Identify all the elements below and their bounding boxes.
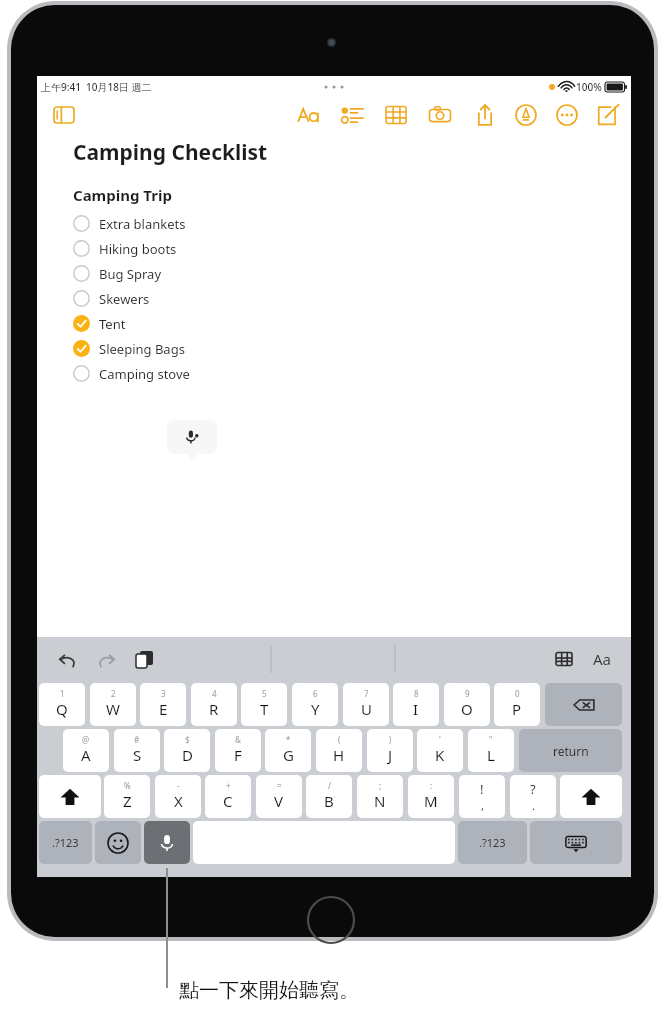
button[interactable]: Checklist <box>335 98 369 132</box>
button[interactable]: ; <box>357 775 403 818</box>
staticText: ) <box>389 734 392 745</box>
button[interactable]: Aa <box>587 644 617 674</box>
staticText: + <box>226 780 231 791</box>
button[interactable]: Table <box>549 644 579 674</box>
staticText: 上午9:41 10月18日 週二 <box>41 80 152 94</box>
staticText: 4 <box>212 688 217 699</box>
button[interactable]: + <box>205 775 251 818</box>
button[interactable]: ( <box>316 729 362 772</box>
button[interactable]: Camping stove <box>73 361 190 386</box>
button[interactable]: .?123 <box>458 821 527 864</box>
staticText: V <box>274 791 284 811</box>
staticText: : <box>430 780 433 791</box>
button[interactable]: Dictate <box>144 821 190 864</box>
button[interactable]: " <box>468 729 514 772</box>
button[interactable]: ! <box>459 775 505 818</box>
staticText: I <box>413 699 419 719</box>
staticText: R <box>209 699 219 719</box>
button[interactable]: More <box>550 98 584 132</box>
button[interactable]: Redo <box>91 644 121 674</box>
staticText: , <box>481 798 484 813</box>
button[interactable]: 9 <box>444 683 490 726</box>
button[interactable]: Hide keyboard <box>530 821 622 864</box>
button[interactable]: Markup <box>509 98 543 132</box>
staticText: C <box>223 791 233 811</box>
staticText: @ <box>82 734 90 745</box>
button[interactable]: 7 <box>343 683 389 726</box>
button[interactable]: * <box>265 729 311 772</box>
button[interactable]: ) <box>367 729 413 772</box>
staticText: F <box>234 745 242 765</box>
staticText: Camping Trip <box>73 185 172 205</box>
button[interactable]: Bug Spray <box>73 261 162 286</box>
staticText: 0 <box>515 688 520 699</box>
staticText: 6 <box>313 688 318 699</box>
staticText: Z <box>123 791 132 811</box>
button[interactable]: 2 <box>90 683 136 726</box>
staticText: .?123 <box>52 835 79 850</box>
button[interactable]: @ <box>63 729 109 772</box>
staticText: = <box>277 780 282 791</box>
button[interactable]: 6 <box>292 683 338 726</box>
staticText: Camping Checklist <box>73 138 268 167</box>
button[interactable]: Extra blankets <box>73 211 186 236</box>
button[interactable]: 1 <box>39 683 85 726</box>
button[interactable]: Share <box>468 98 502 132</box>
button[interactable]: Shift <box>39 775 101 818</box>
button[interactable]: Camera <box>423 98 457 132</box>
button[interactable]: Format <box>291 98 325 132</box>
button[interactable]: / <box>306 775 352 818</box>
staticText: J <box>388 745 393 765</box>
button[interactable]: # <box>114 729 160 772</box>
staticText: D <box>182 745 193 765</box>
button[interactable]: Sleeping Bags <box>73 336 185 361</box>
button[interactable]: Compose <box>591 98 625 132</box>
button[interactable]: 4 <box>191 683 237 726</box>
button[interactable]: Shift <box>560 775 622 818</box>
staticText: 100% <box>576 80 602 94</box>
button[interactable]: 3 <box>140 683 186 726</box>
staticText: % <box>124 780 131 791</box>
staticText: / <box>328 780 331 791</box>
staticText: $ <box>185 734 190 745</box>
staticText: Q <box>56 699 68 719</box>
staticText: O <box>461 699 473 719</box>
staticText: N <box>374 791 386 811</box>
button[interactable]: ' <box>417 729 463 772</box>
staticText: # <box>134 734 140 745</box>
button[interactable]: Undo <box>53 644 83 674</box>
staticText: 點一下來開始聽寫。 <box>179 978 359 1003</box>
button[interactable]: Tent <box>73 311 126 336</box>
staticText: * <box>286 734 291 745</box>
button[interactable]: ? <box>510 775 556 818</box>
button[interactable]: Emoji <box>95 821 141 864</box>
staticText: E <box>159 699 168 719</box>
staticText: T <box>260 699 269 719</box>
staticText: 3 <box>161 688 166 699</box>
button[interactable]: Skewers <box>73 286 150 311</box>
staticText: K <box>435 745 445 765</box>
button[interactable]: = <box>256 775 302 818</box>
button[interactable]: $ <box>164 729 210 772</box>
button[interactable]: - <box>155 775 201 818</box>
button[interactable]: 0 <box>494 683 540 726</box>
staticText: ' <box>439 734 441 745</box>
button[interactable]: Hiking boots <box>73 236 177 261</box>
button[interactable]: 5 <box>241 683 287 726</box>
button[interactable]: Table <box>379 98 413 132</box>
button[interactable]: .?123 <box>39 821 92 864</box>
button[interactable]: % <box>104 775 150 818</box>
staticText: A <box>81 745 91 765</box>
staticText: 7 <box>364 688 369 699</box>
button[interactable]: Backspace <box>545 683 622 726</box>
button[interactable]: : <box>408 775 454 818</box>
button[interactable]: return <box>519 729 622 772</box>
button[interactable]: 8 <box>393 683 439 726</box>
staticText: Camping stove <box>99 365 190 383</box>
button[interactable]: Sidebar <box>47 98 81 132</box>
staticText: P <box>512 699 522 719</box>
staticText: Bug Spray <box>99 265 162 283</box>
button[interactable]: & <box>215 729 261 772</box>
button[interactable]: Paste <box>129 644 159 674</box>
